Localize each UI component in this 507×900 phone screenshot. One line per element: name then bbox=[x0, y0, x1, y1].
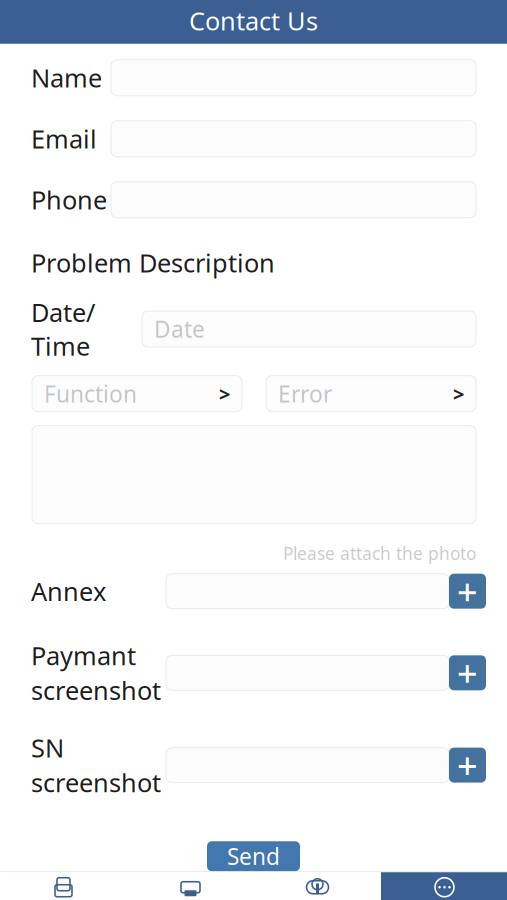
staticText: Contact Us bbox=[189, 4, 318, 37]
staticText: screenshot bbox=[31, 673, 161, 707]
staticText: + bbox=[457, 741, 478, 789]
staticText: Error bbox=[278, 379, 332, 409]
button[interactable]: Error bbox=[266, 376, 476, 412]
staticText: Name bbox=[31, 61, 102, 94]
staticText: Function bbox=[44, 379, 137, 409]
staticText: Send bbox=[227, 841, 280, 871]
staticText: Phone bbox=[31, 183, 107, 216]
staticText: Date/Time bbox=[31, 295, 95, 363]
button[interactable]: Contact us bbox=[381, 872, 507, 900]
staticText: + bbox=[457, 567, 478, 615]
button[interactable]: Function bbox=[32, 376, 242, 412]
staticText: Email bbox=[31, 122, 97, 155]
staticText: Problem Description bbox=[31, 246, 275, 279]
button[interactable]: Home bbox=[0, 872, 127, 900]
staticText: Paymant bbox=[31, 639, 136, 672]
staticText: Please attach the photo bbox=[283, 542, 476, 565]
staticText: > bbox=[453, 380, 464, 407]
button[interactable]: Add attachment bbox=[449, 574, 486, 609]
staticText: screenshot bbox=[31, 766, 161, 799]
button[interactable]: Print Later bbox=[254, 872, 381, 900]
button[interactable]: Add attachment bbox=[449, 655, 486, 690]
staticText: SN bbox=[31, 731, 64, 765]
button[interactable]: Date bbox=[142, 311, 476, 347]
staticText: Date bbox=[154, 314, 205, 344]
button[interactable]: Add attachment bbox=[449, 748, 486, 783]
staticText: + bbox=[457, 649, 478, 697]
staticText: > bbox=[219, 380, 230, 407]
button[interactable]: Send bbox=[207, 841, 300, 871]
button[interactable]: Instant Print bbox=[127, 872, 254, 900]
staticText: Annex bbox=[31, 574, 106, 608]
